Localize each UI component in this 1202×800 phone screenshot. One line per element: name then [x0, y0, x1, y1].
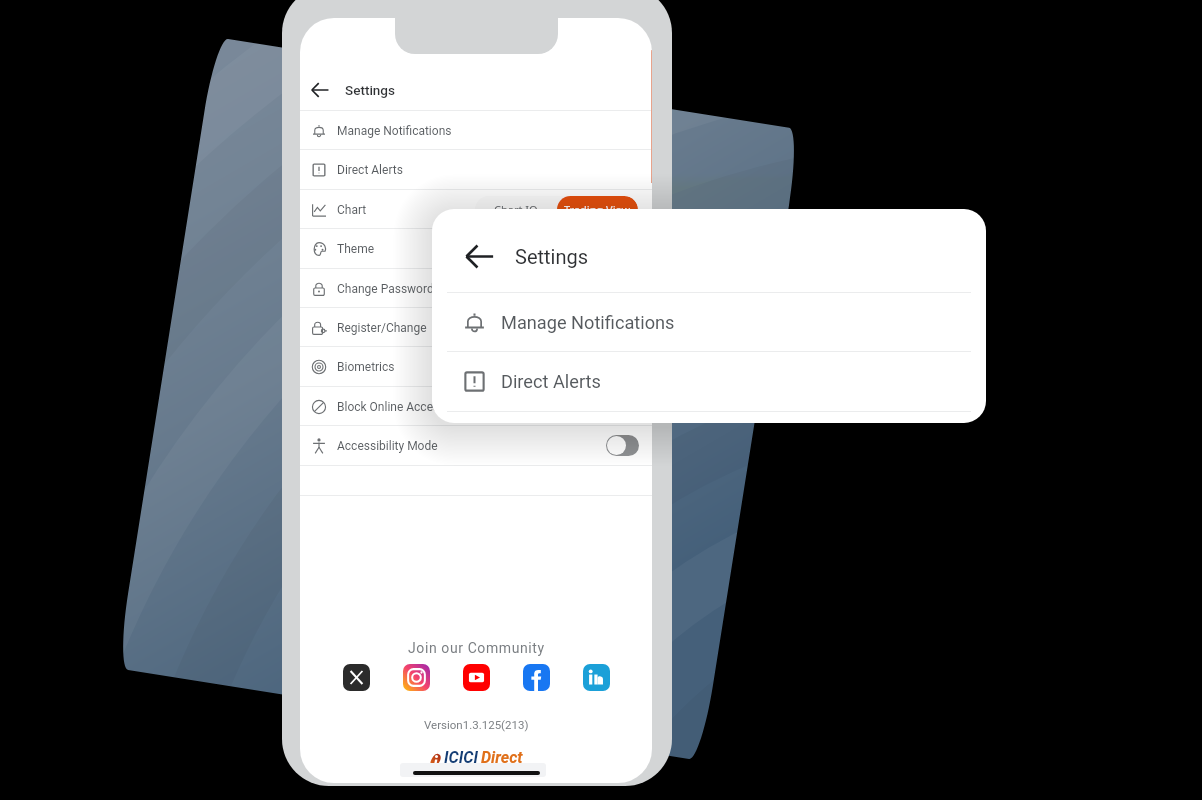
- button[interactable]: Direct Alerts: [300, 150, 652, 189]
- button[interactable]: LinkedIn: [583, 664, 610, 691]
- staticText: Manage Notifications: [337, 124, 452, 138]
- button[interactable]: Register/Change: [300, 308, 652, 347]
- button[interactable]: YouTube: [463, 664, 490, 691]
- staticText: Block Online Access: [337, 400, 446, 414]
- staticText: Direct Alerts: [337, 163, 403, 177]
- staticText: Trading View: [564, 202, 631, 217]
- staticText: Theme: [337, 242, 375, 256]
- staticText: Join our Community: [408, 640, 545, 656]
- staticText: Direct: [481, 748, 523, 767]
- staticText: Version1.3.125(213): [424, 718, 529, 731]
- staticText: Chart: [337, 203, 367, 217]
- button[interactable]: Block Online Access: [300, 387, 652, 426]
- button[interactable]: Back: [311, 81, 329, 99]
- staticText: Biometrics: [337, 360, 395, 374]
- button[interactable]: Chart IQ: [475, 196, 557, 223]
- staticText: Accessibility Mode: [337, 439, 438, 453]
- button[interactable]: X: [343, 664, 370, 691]
- button[interactable]: Chart: [300, 190, 652, 229]
- staticText: Change Password: [337, 282, 434, 296]
- staticText: Settings: [345, 82, 395, 98]
- button[interactable]: Accessibility mode toggle: [606, 435, 639, 456]
- staticText: ICICI: [444, 748, 478, 767]
- button[interactable]: Manage Notifications: [432, 293, 986, 351]
- staticText: Settings: [515, 245, 589, 268]
- staticText: Manage Notifications: [501, 312, 675, 333]
- staticText: Direct Alerts: [501, 371, 601, 392]
- staticText: Register/Change: [337, 321, 427, 335]
- button[interactable]: Facebook: [523, 664, 550, 691]
- button[interactable]: Back: [300, 71, 652, 109]
- button[interactable]: Manage Notifications: [300, 111, 652, 150]
- button[interactable]: Trading View: [557, 196, 638, 223]
- staticText: Chart IQ: [494, 202, 538, 217]
- button[interactable]: Biometrics: [300, 347, 652, 386]
- button[interactable]: Theme: [300, 229, 652, 268]
- button[interactable]: Back: [432, 227, 986, 285]
- button[interactable]: Instagram: [403, 664, 430, 691]
- button[interactable]: Accessibility Mode: [300, 426, 652, 465]
- button[interactable]: Back: [465, 242, 494, 271]
- button[interactable]: Change Password: [300, 269, 652, 308]
- button[interactable]: Direct Alerts: [432, 352, 986, 410]
